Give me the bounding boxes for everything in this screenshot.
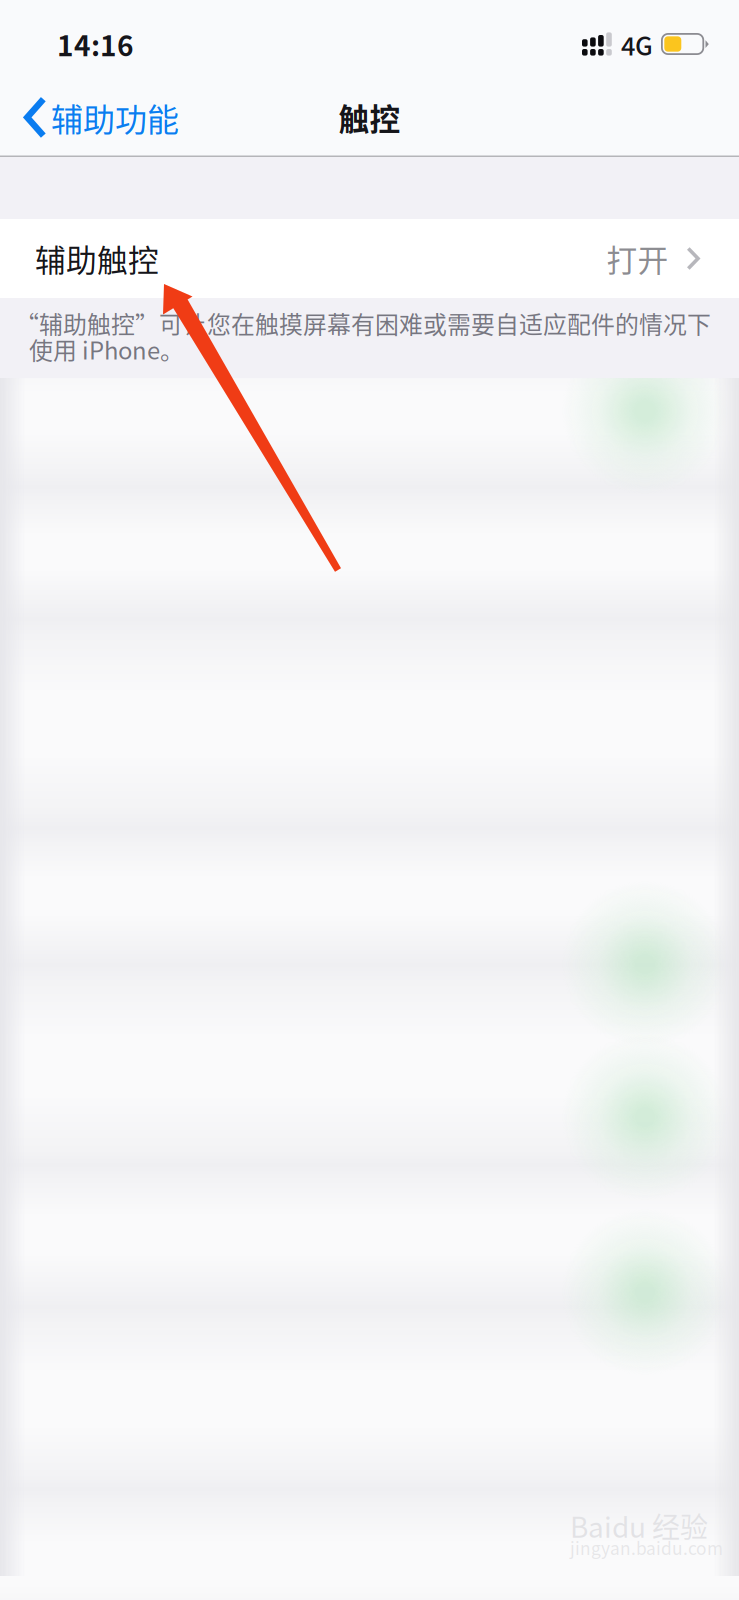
staticText: 打开 (606, 236, 668, 281)
staticText: jingyan.baidu.com (570, 1535, 723, 1560)
staticText: 辅助触控 (35, 236, 159, 281)
staticText: 14:16 (57, 24, 134, 64)
staticText: “辅助触控”可让您在触摸屏幕有困难或需要自适应配件的情况下 (15, 306, 711, 340)
button[interactable]: 辅助功能 (0, 78, 195, 157)
staticText: 辅助功能 (51, 94, 179, 141)
button[interactable]: 辅助触控 (0, 219, 739, 298)
staticText: 使用 iPhone。 (29, 332, 184, 366)
staticText: Baidu 经验 (570, 1505, 708, 1546)
staticText: 触控 (338, 95, 400, 140)
staticText: 4G (621, 26, 653, 63)
